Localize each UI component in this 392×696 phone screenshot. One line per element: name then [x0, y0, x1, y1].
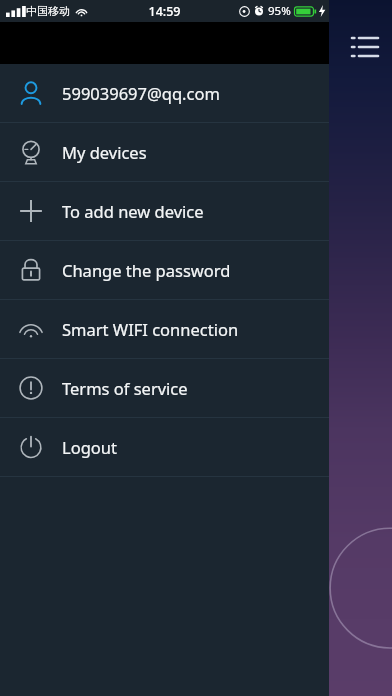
- staticText: 中国移动: [26, 4, 70, 18]
- staticText: 14:59: [148, 3, 181, 20]
- staticText: 95%: [268, 3, 291, 19]
- staticText: Smart WIFI connection: [62, 318, 239, 340]
- staticText: 599039697@qq.com: [62, 82, 220, 104]
- button[interactable]: Menu: [348, 32, 380, 64]
- staticText: Terms of service: [62, 377, 188, 399]
- button[interactable]: Change the password: [0, 241, 329, 299]
- staticText: My devices: [62, 141, 147, 163]
- staticText: Change the password: [62, 259, 231, 281]
- staticText: To add new device: [62, 200, 204, 222]
- button[interactable]: To add new device: [0, 182, 329, 240]
- button[interactable]: Terms of service: [0, 359, 329, 417]
- button[interactable]: 599039697@qq.com: [0, 64, 329, 122]
- button[interactable]: Logout: [0, 418, 329, 476]
- staticText: Logout: [62, 436, 117, 458]
- button[interactable]: Smart WIFI connection: [0, 300, 329, 358]
- button[interactable]: My devices: [0, 123, 329, 181]
